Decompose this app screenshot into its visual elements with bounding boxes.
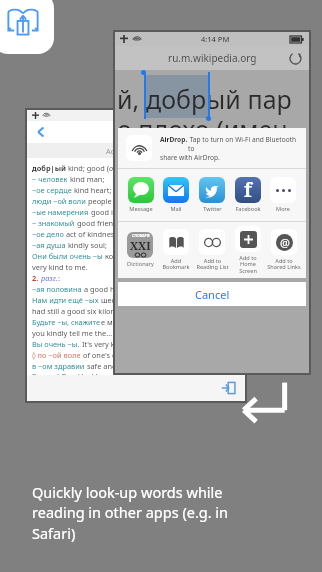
button[interactable]: App icon xyxy=(0,0,54,54)
staticText: ~ знакомый xyxy=(32,218,75,228)
button[interactable]: Add to Reading List xyxy=(195,229,229,271)
staticText: Вы очень ~ы. xyxy=(32,339,80,349)
staticText: Dictionary xyxy=(127,260,154,268)
staticText: о плохо (имен xyxy=(117,112,288,146)
staticText: More xyxy=(276,205,290,213)
button[interactable]: Cancel xyxy=(118,282,306,306)
staticText: : xyxy=(58,273,60,283)
staticText: 4:14 PM xyxy=(201,34,230,44)
staticText: AirDrop. xyxy=(160,135,188,144)
staticText: ru.m.wikipedia.org xyxy=(168,51,257,65)
staticText: you kindly tell me the… xyxy=(32,328,113,338)
staticText: @ xyxy=(280,235,290,250)
staticText: В ~ час! xyxy=(32,371,59,375)
staticText: Twitter xyxy=(203,205,222,213)
staticText: people of goodwill; xyxy=(86,196,155,206)
staticText: Facebook xyxy=(235,205,261,213)
staticText: Good luck!; xyxy=(59,371,100,375)
button[interactable]: More xyxy=(266,177,300,213)
staticText: в ~ом здравии xyxy=(32,361,85,371)
staticText: Add to Shared Links xyxy=(267,257,301,271)
staticText: good intentions; xyxy=(89,207,148,217)
staticText: ); xyxy=(154,163,159,173)
staticText: ~ые намерения xyxy=(32,207,89,217)
staticText: Add to Reading List xyxy=(196,257,229,271)
button[interactable]: AirDrop. xyxy=(126,128,298,168)
staticText: Tap to turn on Wi-Fi and Bluetooth to xyxy=(188,135,298,153)
button[interactable]: f xyxy=(231,177,265,213)
staticText: добрый xyxy=(146,82,241,116)
staticText: Mail xyxy=(170,205,182,213)
staticText: had still a good six kilometres xyxy=(32,306,135,316)
staticText: Add to Home Screen xyxy=(231,254,265,275)
staticText: Cancel xyxy=(195,287,230,302)
staticText: kind man; xyxy=(68,174,105,184)
button[interactable]: Add Bookmark xyxy=(159,229,193,271)
staticText: share with AirDrop. xyxy=(160,153,220,162)
staticText: Add Bookmark xyxy=(162,257,190,271)
button[interactable]: Return to app xyxy=(240,378,302,424)
staticText: Academic (Ru-En) xyxy=(106,146,167,156)
staticText: a good half; xyxy=(82,284,126,294)
button[interactable]: Message xyxy=(124,177,158,213)
staticText: f xyxy=(244,177,252,203)
staticText: ◊ по ~ой воле xyxy=(32,350,81,360)
button[interactable]: Open in app xyxy=(221,380,237,396)
staticText: safe and sound; xyxy=(85,361,143,371)
staticText: kind heart; xyxy=(72,185,112,195)
staticText: ~ое сердце xyxy=(32,185,72,195)
staticText: kindly soul; xyxy=(66,240,107,250)
staticText: о воле, славе xyxy=(109,163,154,173)
staticText: ко мне. xyxy=(103,251,132,261)
staticText: пар xyxy=(241,82,292,116)
staticText: kind; good ( xyxy=(66,163,109,173)
staticText: XXI xyxy=(130,238,151,253)
staticText: СЛОВАРИ xyxy=(132,233,150,238)
staticText: of one's own free will; xyxy=(81,350,158,360)
staticText: ~ человек xyxy=(32,174,68,184)
staticText: люди ~ой воли xyxy=(32,196,86,206)
staticText: 2. xyxy=(32,273,39,283)
staticText: Quickly look-up words while reading in o… xyxy=(32,482,294,544)
button[interactable]: Mail xyxy=(159,177,193,213)
staticText: Будьте ~ы, скажите xyxy=(32,317,101,327)
staticText: ~ая половина xyxy=(32,284,82,294)
staticText: good friend; xyxy=(75,218,120,228)
staticText: добр|ый xyxy=(32,163,66,173)
staticText: Message xyxy=(129,205,153,213)
staticText: ~ое дело xyxy=(32,229,64,239)
button[interactable]: СЛОВАРИ xyxy=(123,232,157,268)
staticText: ~ая душа xyxy=(32,240,66,250)
staticText: Нам идти ещё ~ых xyxy=(32,295,99,305)
staticText: разг. xyxy=(39,273,58,283)
button[interactable]: @ xyxy=(267,229,301,271)
button[interactable]: Add to Home Screen xyxy=(231,226,265,275)
staticText: Они были очень ~ы xyxy=(32,251,103,261)
staticText: very kind to me. xyxy=(32,262,88,272)
staticText: act of kindness; xyxy=(64,229,120,239)
staticText: е мне… Would xyxy=(101,317,152,327)
staticText: й, xyxy=(117,82,146,116)
staticText: шесть вёрст. We xyxy=(99,295,159,305)
button[interactable]: Twitter xyxy=(195,177,229,213)
staticText: It's very kind of you. xyxy=(80,339,152,349)
